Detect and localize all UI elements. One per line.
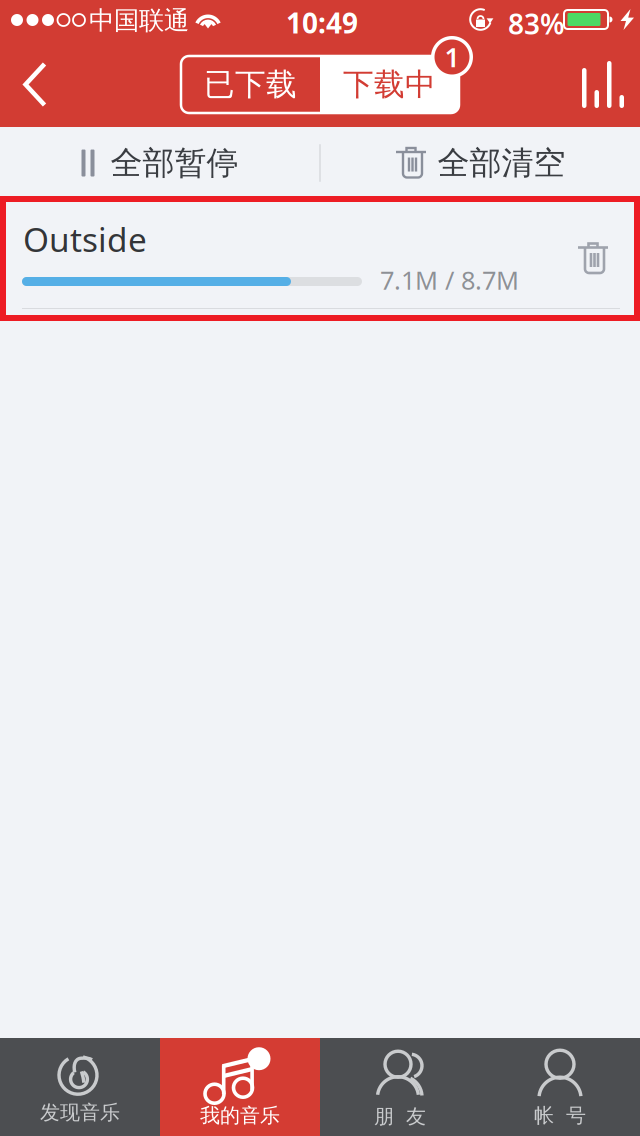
staticText: 下载中 [343,66,436,103]
button[interactable]: 发现音乐 [0,1038,160,1136]
button[interactable]: 已下载 [181,56,459,113]
staticText: 10:49 [286,4,358,41]
button[interactable]: 全部暂停 [0,127,320,199]
staticText: 全部暂停 [110,143,238,183]
staticText: 帐 号 [534,1103,586,1128]
button[interactable]: Outside [0,199,640,318]
staticText: 83% [508,5,565,42]
button[interactable]: Delete download [0,199,70,318]
staticText: Outside [23,217,147,261]
staticText: 已下载 [204,66,297,103]
button[interactable]: 朋 友 [320,1038,480,1136]
staticText: 1 [444,39,459,75]
button[interactable]: Equalizer [566,42,640,126]
staticText: 7.1M / 8.7M [380,263,519,297]
button[interactable]: 我的音乐 [160,1038,320,1136]
button[interactable]: 帐 号 [480,1038,640,1136]
staticText: 全部清空 [437,143,565,183]
button[interactable]: 全部清空 [320,127,640,199]
staticText: 发现音乐 [40,1100,120,1125]
button[interactable]: Back [0,42,70,126]
staticText: 朋 友 [374,1104,426,1129]
staticText: 我的音乐 [200,1103,280,1128]
staticText: 中国联通 [89,5,189,36]
